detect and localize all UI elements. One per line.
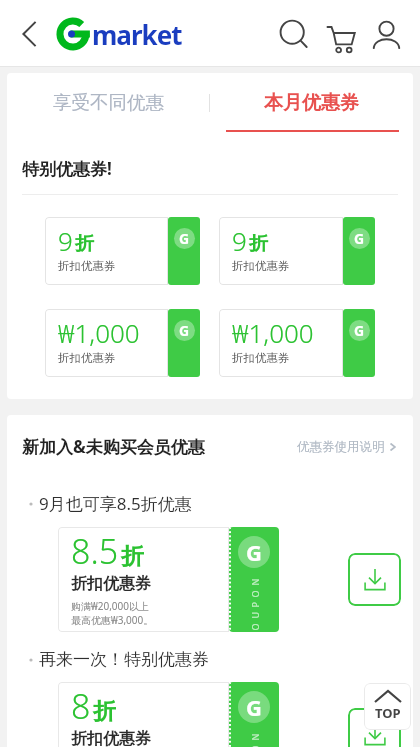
staticText: 9月也可享8.5折优惠 <box>39 492 192 515</box>
staticText: 折扣优惠券 <box>232 259 290 273</box>
button[interactable]: Search <box>271 11 317 57</box>
staticText: G <box>179 321 190 340</box>
button[interactable]: 优惠券使用说明 <box>297 439 398 455</box>
button[interactable]: My page <box>363 11 409 57</box>
staticText: O <box>248 744 259 747</box>
staticText: 折 <box>75 232 94 256</box>
button[interactable]: ₩1,000 <box>45 309 200 377</box>
staticText: 本月优惠券 <box>264 91 359 115</box>
staticText: 9 <box>58 223 73 258</box>
staticText: 折扣优惠券 <box>58 351 116 365</box>
button[interactable]: Download coupon <box>348 708 401 747</box>
staticText: G <box>354 229 365 248</box>
staticText: 新加入&未购买会员优惠 <box>22 435 205 458</box>
button[interactable]: 8.5 <box>58 527 279 632</box>
button[interactable]: 8 <box>58 682 279 747</box>
button[interactable]: 享受不同优惠 <box>7 73 209 132</box>
staticText: N <box>248 578 259 585</box>
staticText: 最高优惠₩3,000。 <box>71 613 154 627</box>
staticText: TOP <box>375 704 401 722</box>
staticText: G <box>354 321 365 340</box>
staticText: 折 <box>121 542 144 571</box>
button[interactable]: ₩1,000 <box>219 309 375 377</box>
staticText: 购满₩20,000以上 <box>71 599 149 613</box>
staticText: N <box>248 733 259 740</box>
staticText: 优惠券使用说明 <box>297 439 385 455</box>
button[interactable]: 本月优惠券 <box>210 73 413 132</box>
button[interactable]: Cart <box>317 11 363 57</box>
staticText: 折扣优惠券 <box>71 729 151 747</box>
staticText: O <box>248 622 259 630</box>
staticText: 折 <box>249 232 268 256</box>
staticText: 再来一次！特别优惠券 <box>39 649 209 670</box>
staticText: ₩1,000 <box>232 315 314 350</box>
staticText: 8.5 <box>71 528 119 574</box>
staticText: 8 <box>71 683 91 729</box>
staticText: 折扣优惠券 <box>58 259 116 273</box>
button[interactable]: Back <box>10 15 48 53</box>
staticText: 折 <box>93 697 116 726</box>
staticText: G <box>179 229 190 248</box>
staticText: G <box>246 537 262 567</box>
staticText: U <box>248 611 259 618</box>
staticText: G <box>246 692 262 722</box>
staticText: 折扣优惠券 <box>232 351 290 365</box>
button[interactable]: Scroll to top <box>364 683 411 730</box>
staticText: 9 <box>232 223 247 258</box>
button[interactable]: Download coupon <box>348 553 401 606</box>
button[interactable]: 9 <box>219 217 375 285</box>
staticText: ₩1,000 <box>58 315 140 350</box>
staticText: 特别优惠券! <box>22 157 112 180</box>
staticText: P <box>248 601 259 607</box>
staticText: 享受不同优惠 <box>53 91 164 114</box>
staticText: O <box>248 589 259 597</box>
button[interactable]: 9 <box>45 217 200 285</box>
staticText: market <box>92 17 182 52</box>
staticText: 折扣优惠券 <box>71 574 151 594</box>
